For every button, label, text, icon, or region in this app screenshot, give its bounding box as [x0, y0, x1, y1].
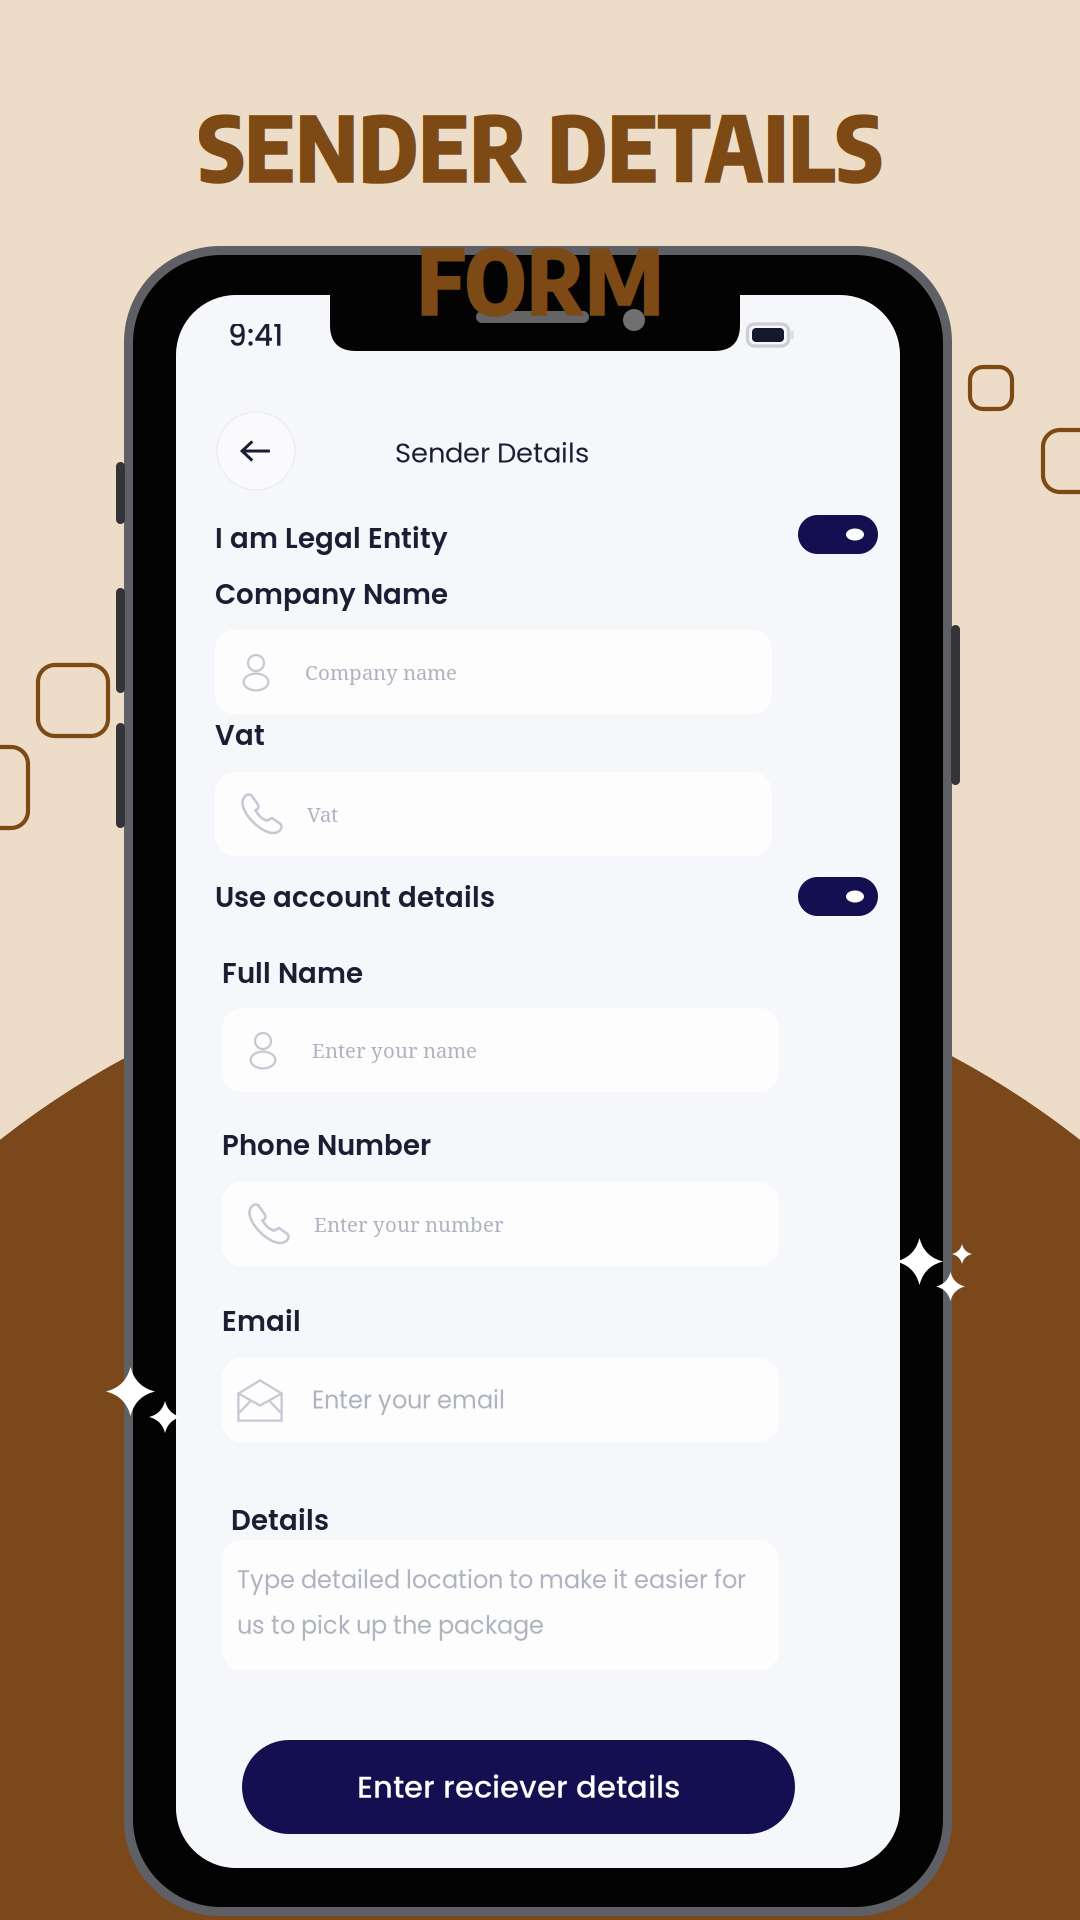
staticText: Enter reciever details — [357, 1765, 680, 1808]
staticText: FORM — [417, 221, 663, 336]
button[interactable]: Vat — [215, 772, 772, 856]
button[interactable]: Enter your number — [222, 1182, 779, 1266]
staticText: Vat — [215, 716, 265, 755]
button[interactable]: Company name — [215, 630, 772, 714]
staticText: Email — [222, 1302, 301, 1341]
staticText: Details — [231, 1501, 329, 1540]
staticText: Sender Details — [395, 434, 589, 472]
staticText: Enter your number — [314, 1210, 504, 1238]
button[interactable]: Toggle — [798, 515, 878, 554]
staticText: Phone Number — [222, 1126, 431, 1165]
staticText: I am Legal Entity — [215, 519, 448, 558]
button[interactable]: Enter reciever details — [242, 1740, 795, 1834]
staticText: Use account details — [215, 878, 495, 917]
button[interactable]: Back — [217, 412, 295, 490]
staticText: Enter your name — [312, 1036, 477, 1064]
staticText: Company name — [305, 658, 457, 686]
staticText: Vat — [307, 800, 338, 828]
staticText: Company Name — [215, 575, 448, 614]
staticText: Type detailed location to make it easier… — [237, 1563, 746, 1642]
staticText: Full Name — [222, 954, 363, 993]
staticText: SENDER DETAILS — [197, 88, 882, 203]
button[interactable]: Enter your name — [222, 1008, 779, 1092]
button[interactable]: Enter your email — [222, 1358, 779, 1442]
button[interactable]: Toggle — [798, 877, 878, 916]
staticText: 9:41 — [228, 315, 283, 356]
staticText: Enter your email — [312, 1383, 505, 1417]
